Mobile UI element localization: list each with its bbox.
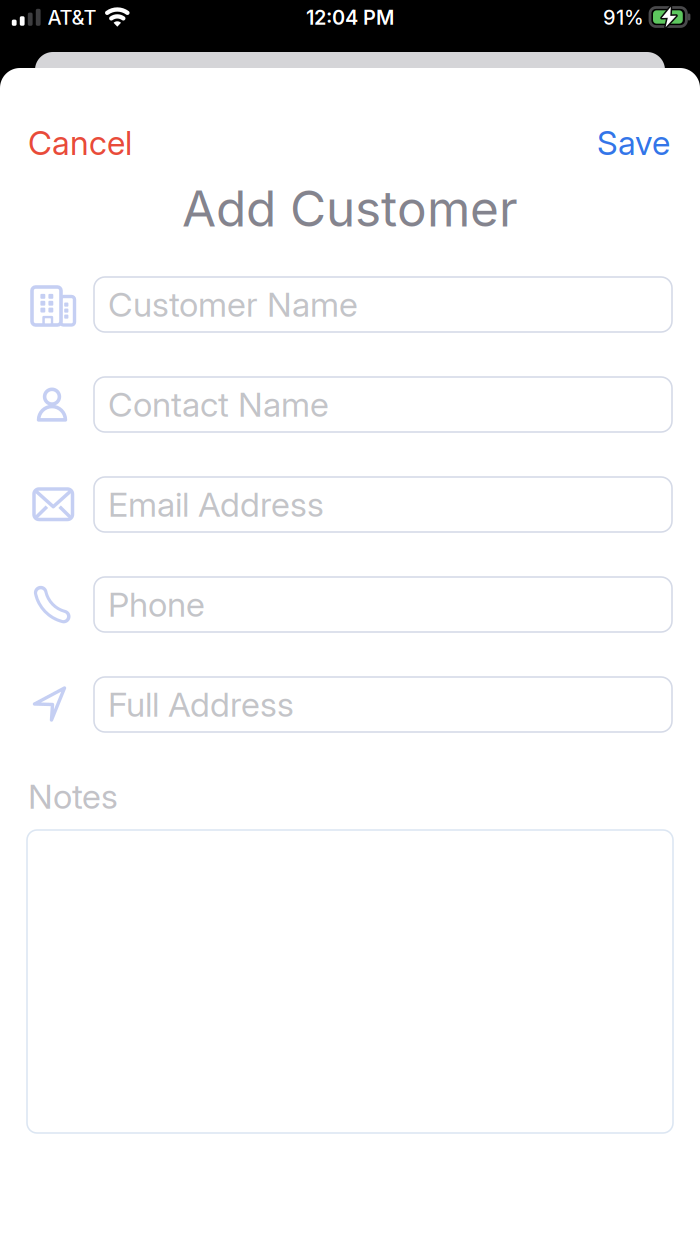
staticText: Contact Name: [108, 384, 329, 425]
staticText: Full Address: [108, 684, 294, 725]
button[interactable]: Phone: [94, 577, 672, 632]
staticText: Cancel: [28, 123, 132, 163]
button[interactable]: Contact Name: [94, 377, 672, 432]
staticText: Phone: [108, 584, 205, 625]
staticText: 91%: [603, 5, 644, 30]
staticText: Email Address: [108, 484, 324, 525]
button[interactable]: Full Address: [94, 677, 672, 732]
staticText: Save: [597, 123, 670, 163]
button[interactable]: Email Address: [94, 477, 672, 532]
staticText: Notes: [28, 776, 118, 817]
staticText: AT&T: [47, 5, 96, 30]
staticText: Add Customer: [182, 179, 518, 238]
staticText: Customer Name: [108, 284, 358, 325]
button[interactable]: Cancel: [28, 123, 132, 163]
staticText: 12:04 PM: [306, 5, 394, 30]
button[interactable]: Customer Name: [94, 277, 672, 332]
button[interactable]: Save: [597, 123, 670, 163]
